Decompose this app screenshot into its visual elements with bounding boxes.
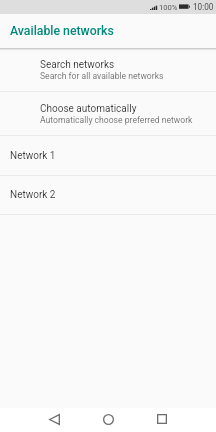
button[interactable]: Recent apps (135, 408, 189, 430)
button[interactable]: Back (27, 408, 81, 430)
staticText: 10:00 (193, 2, 214, 12)
button[interactable]: Network 1 (0, 136, 216, 175)
staticText: Search for all available networks (40, 71, 164, 81)
staticText: Available networks (10, 24, 114, 38)
button[interactable]: Search networks (0, 48, 216, 91)
staticText: 100% (159, 3, 178, 12)
staticText: Automatically choose preferred network (40, 115, 193, 125)
button[interactable]: Home (81, 408, 135, 430)
staticText: Search networks (40, 59, 115, 71)
staticText: Network 2 (10, 189, 56, 201)
button[interactable]: Choose automatically (0, 92, 216, 135)
staticText: Network 1 (10, 150, 56, 162)
staticText: Choose automatically (40, 103, 137, 115)
button[interactable]: Network 2 (0, 176, 216, 214)
